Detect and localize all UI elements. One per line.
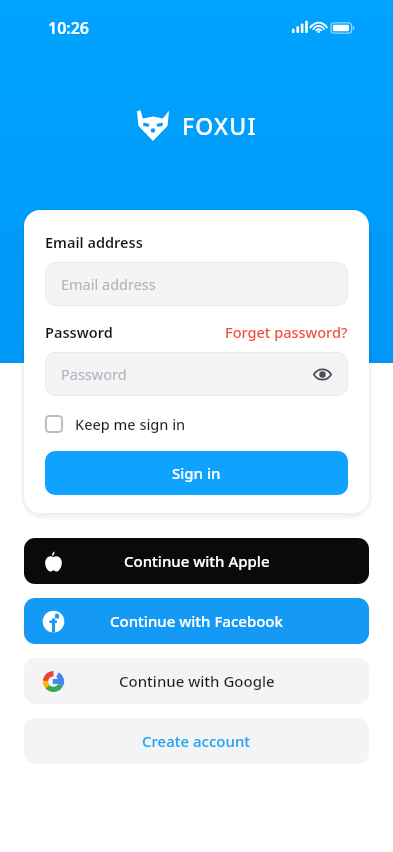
staticText: Continue with Apple (124, 551, 270, 571)
staticText: Email address (61, 274, 156, 294)
button[interactable]: Continue with Apple (24, 538, 369, 584)
staticText: 10:26 (48, 17, 90, 39)
staticText: Keep me sign in (75, 414, 186, 434)
button[interactable]: Email address (45, 262, 348, 306)
button[interactable]: Forget password? (225, 322, 348, 342)
button[interactable]: Sign in (45, 451, 348, 495)
staticText: Create account (142, 731, 251, 751)
staticText: Continue with Google (119, 671, 275, 691)
staticText: Email address (45, 232, 143, 252)
staticText: FOXUI (182, 110, 257, 141)
button[interactable]: Continue with Facebook (24, 598, 369, 644)
staticText: Forget password? (225, 322, 348, 342)
button[interactable]: Continue with Google (24, 658, 369, 704)
staticText: Continue with Facebook (110, 611, 283, 631)
other: Show password (313, 365, 332, 384)
button[interactable]: Keep me sign in (45, 412, 186, 436)
staticText: Password (45, 322, 113, 342)
staticText: Password (61, 364, 127, 384)
button[interactable]: Create account (24, 718, 369, 764)
staticText: Sign in (172, 463, 221, 483)
button[interactable]: Password (45, 352, 348, 396)
